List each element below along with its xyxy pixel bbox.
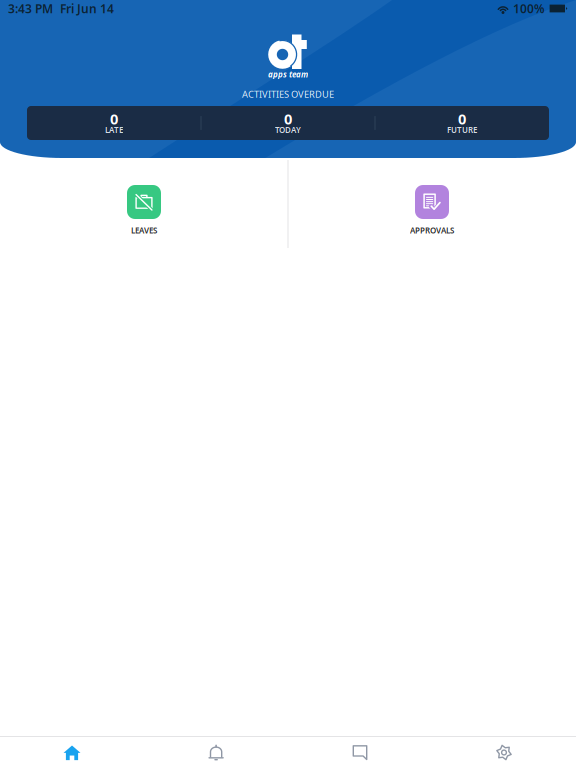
staticText: 3:43 PM	[8, 0, 53, 16]
staticText: TODAY	[275, 124, 301, 135]
staticText: FUTURE	[447, 124, 477, 135]
staticText: 0	[284, 109, 292, 128]
button[interactable]: Home	[0, 737, 144, 768]
button[interactable]: Messages	[288, 737, 432, 768]
staticText: 100%	[513, 0, 545, 16]
staticText: APPROVALS	[410, 225, 454, 236]
button[interactable]: Settings	[432, 737, 576, 768]
staticText: 0	[458, 109, 466, 128]
staticText: LEAVES	[131, 225, 157, 236]
staticText: 0	[110, 109, 118, 128]
staticText: LATE	[105, 124, 123, 135]
staticText: apps team	[268, 69, 308, 80]
staticText: ACTIVITIES OVERDUE	[242, 88, 334, 100]
staticText: Fri Jun 14	[60, 0, 114, 16]
button[interactable]: Notifications	[144, 737, 288, 768]
button[interactable]: LEAVES	[0, 185, 288, 236]
button[interactable]: APPROVALS	[288, 185, 576, 236]
